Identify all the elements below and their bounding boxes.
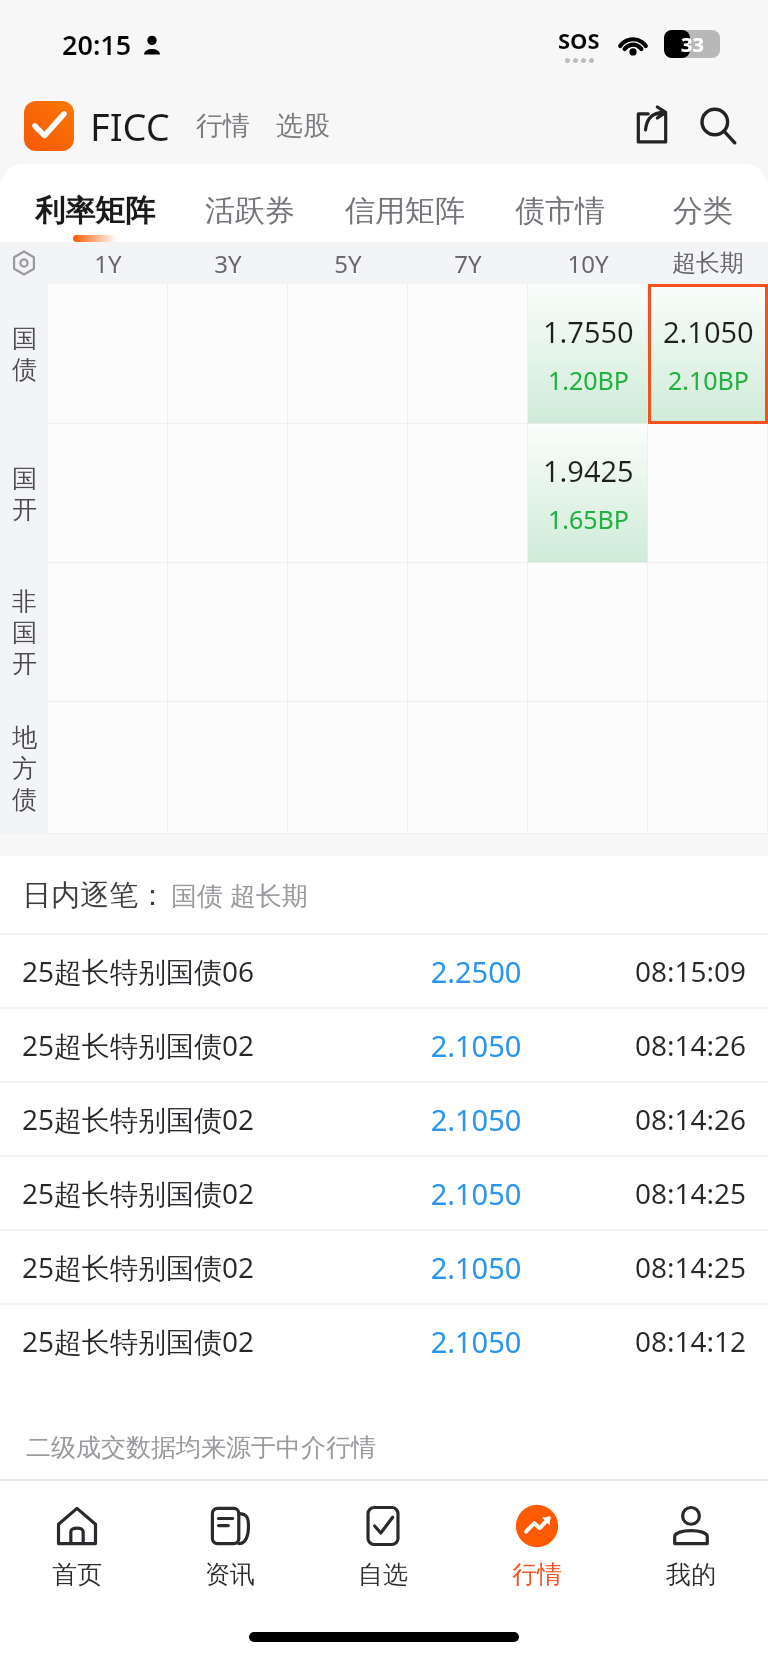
staticText: 开 (12, 648, 37, 679)
staticText: FICC (90, 100, 170, 152)
staticText: 国 (12, 463, 37, 494)
button[interactable]: 25超长特别国债02 (0, 1008, 768, 1082)
staticText: 2.1050 (386, 1174, 566, 1213)
staticText: 债 (12, 354, 37, 385)
staticText: 25超长特别国债02 (22, 1248, 386, 1286)
staticText: 2.1050 (386, 1322, 566, 1361)
staticText: 7Y (454, 247, 482, 280)
staticText: 债 (12, 784, 37, 815)
staticText: 08:14:25 (566, 1174, 746, 1212)
staticText: 10Y (567, 247, 609, 280)
staticText: 25超长特别国债06 (22, 952, 386, 990)
staticText: 我的 (666, 1559, 716, 1590)
button[interactable]: 利率矩阵 (18, 164, 172, 242)
staticText: 08:14:26 (566, 1026, 746, 1064)
button[interactable]: 25超长特别国债06 (0, 934, 768, 1008)
button[interactable]: 活跃券 (172, 164, 327, 242)
button[interactable]: 信用矩阵 (327, 164, 482, 242)
staticText: 国 (12, 617, 37, 648)
staticText: 08:14:12 (566, 1322, 746, 1360)
staticText: 1.7550 (543, 312, 634, 351)
staticText: 超长期 (672, 248, 744, 278)
staticText: 信用矩阵 (345, 192, 465, 230)
staticText: 行情 (512, 1559, 562, 1590)
staticText: SOS (558, 25, 600, 55)
button[interactable]: 25超长特别国债02 (0, 1156, 768, 1230)
staticText: 5Y (334, 247, 362, 280)
button[interactable] (528, 284, 648, 424)
button[interactable]: 我的 (614, 1481, 768, 1611)
staticText: 自选 (358, 1559, 408, 1590)
staticText: 25超长特别国债02 (22, 1322, 386, 1360)
staticText: 债市情 (515, 192, 605, 230)
staticText: 日内逐笔： (22, 877, 167, 914)
button[interactable]: 选股 (276, 109, 330, 143)
button[interactable]: 分类 (637, 164, 768, 242)
staticText: 资讯 (205, 1559, 255, 1590)
button[interactable]: 行情 (460, 1481, 614, 1611)
staticText: 25超长特别国债02 (22, 1100, 386, 1138)
staticText: 08:15:09 (566, 952, 746, 990)
button[interactable]: 25超长特别国债02 (0, 1230, 768, 1304)
staticText: 08:14:26 (566, 1100, 746, 1138)
staticText: 08:14:25 (566, 1248, 746, 1286)
staticText: 1Y (94, 247, 122, 280)
staticText: 33 (681, 31, 704, 58)
staticText: 1.65BP (548, 502, 629, 536)
staticText: 国 (12, 323, 37, 354)
button[interactable]: 首页 (0, 1481, 153, 1611)
button[interactable] (528, 424, 648, 563)
staticText: 国债 超长期 (171, 877, 308, 913)
button[interactable]: 25超长特别国债02 (0, 1304, 768, 1378)
staticText: 利率矩阵 (35, 192, 155, 230)
button[interactable] (648, 284, 768, 424)
staticText: 活跃券 (205, 192, 295, 230)
staticText: 25超长特别国债02 (22, 1026, 386, 1064)
staticText: 方 (12, 753, 37, 784)
staticText: 2.1050 (386, 1248, 566, 1287)
staticText: 非 (12, 586, 37, 617)
staticText: 2.1050 (386, 1026, 566, 1065)
staticText: 3Y (214, 247, 242, 280)
staticText: 开 (12, 494, 37, 525)
staticText: 二级成交数据均来源于中介行情 (26, 1432, 376, 1463)
staticText: 1.9425 (543, 451, 634, 490)
staticText: 地 (12, 722, 37, 753)
staticText: 25超长特别国债02 (22, 1174, 386, 1212)
staticText: 分类 (673, 192, 733, 230)
button[interactable]: 自选 (306, 1481, 460, 1611)
button[interactable]: 行情 (196, 109, 250, 143)
button[interactable]: 25超长特别国债02 (0, 1082, 768, 1156)
button[interactable]: Search (692, 100, 744, 152)
button[interactable]: FICC logo (24, 101, 74, 151)
button[interactable]: Share (626, 100, 678, 152)
staticText: 2.10BP (668, 363, 749, 397)
button[interactable]: 债市情 (482, 164, 637, 242)
button[interactable]: 资讯 (153, 1481, 306, 1611)
staticText: 2.1050 (663, 312, 754, 351)
staticText: 首页 (52, 1559, 102, 1590)
staticText: 2.2500 (386, 952, 566, 991)
staticText: 20:15 (62, 26, 132, 63)
